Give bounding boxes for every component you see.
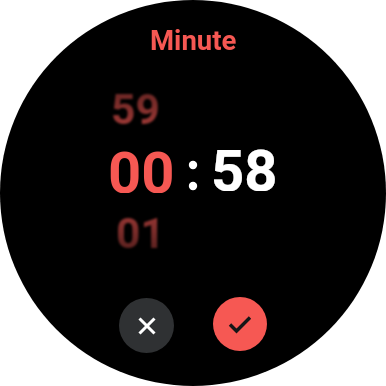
staticText: Minute bbox=[150, 24, 237, 56]
button[interactable] bbox=[119, 298, 174, 353]
staticText: 01 bbox=[116, 209, 165, 253]
staticText: 00 bbox=[108, 139, 175, 193]
staticText: 58 bbox=[211, 137, 278, 191]
staticText: 59 bbox=[111, 85, 160, 129]
button[interactable]: 00 bbox=[103, 139, 179, 193]
button[interactable]: 58 bbox=[206, 137, 282, 191]
button[interactable] bbox=[213, 297, 267, 351]
